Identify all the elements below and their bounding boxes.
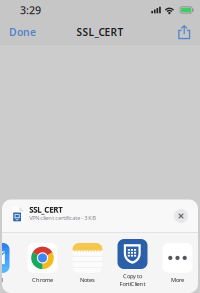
staticText: Done: [9, 25, 36, 39]
button[interactable]: Copy to: [110, 239, 155, 288]
staticText: Chrome: [32, 276, 53, 284]
button[interactable]: Share: [168, 20, 200, 44]
button[interactable]: Chrome: [20, 243, 65, 284]
button[interactable]: Done: [0, 20, 45, 44]
staticText: FortiClient: [119, 280, 145, 288]
button[interactable]: More: [155, 243, 200, 284]
staticText: 3:29: [20, 3, 41, 17]
staticText: Notes: [80, 276, 95, 284]
button[interactable]: Notes: [65, 243, 110, 284]
staticText: Copy to: [123, 272, 142, 280]
staticText: SSL_CERT: [76, 25, 123, 39]
staticText: SSL_CERT: [29, 204, 63, 215]
button[interactable]: Close: [172, 207, 190, 225]
button[interactable]: Mail: [0, 243, 20, 284]
staticText: VPN client certificate · 3 KB: [29, 214, 96, 222]
staticText: More: [171, 276, 184, 284]
